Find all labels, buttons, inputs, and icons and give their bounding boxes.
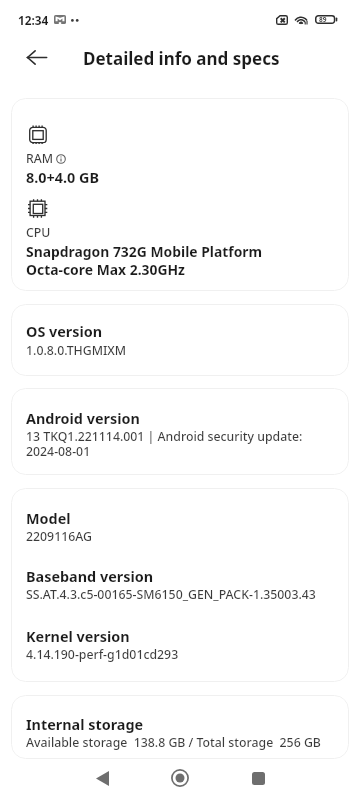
staticText: CPU	[26, 224, 51, 241]
button[interactable]: Internal storage	[11, 695, 349, 759]
button[interactable]: RAM	[11, 98, 349, 291]
staticText: Kernel version	[26, 627, 130, 647]
button[interactable]: Android version	[11, 388, 349, 475]
staticText: Baseband version	[26, 567, 154, 587]
button[interactable]: Model	[11, 488, 349, 682]
button[interactable]: Home	[158, 756, 202, 800]
staticText: Android version	[26, 409, 140, 429]
staticText: 4.14.190-perf-g1d01cd293	[26, 646, 179, 663]
button[interactable]: Back	[22, 43, 50, 71]
staticText: Model	[26, 509, 71, 529]
staticText: Snapdragon 732G Mobile Platform Octa-cor…	[26, 242, 263, 279]
staticText: 1.0.8.0.THGMIXM	[26, 342, 127, 359]
staticText: OS version	[26, 322, 103, 342]
staticText: RAM	[26, 150, 54, 167]
staticText: Available storage 138.8 GB / Total stora…	[26, 734, 321, 751]
staticText: 12:34	[18, 12, 49, 28]
button[interactable]: OS version	[11, 304, 349, 376]
staticText: SS.AT.4.3.c5-00165-SM6150_GEN_PACK-1.350…	[26, 586, 316, 603]
staticText: 2209116AG	[26, 528, 92, 545]
staticText: 13 TKQ1.221114.001 | Android security up…	[26, 428, 303, 460]
button[interactable]: Back	[80, 756, 124, 800]
staticText: 89	[319, 15, 327, 24]
staticText: 8.0+4.0 GB	[26, 168, 99, 188]
staticText: Internal storage	[26, 715, 144, 735]
staticText: Detailed info and specs	[83, 47, 280, 70]
button[interactable]: Recents	[236, 756, 280, 800]
